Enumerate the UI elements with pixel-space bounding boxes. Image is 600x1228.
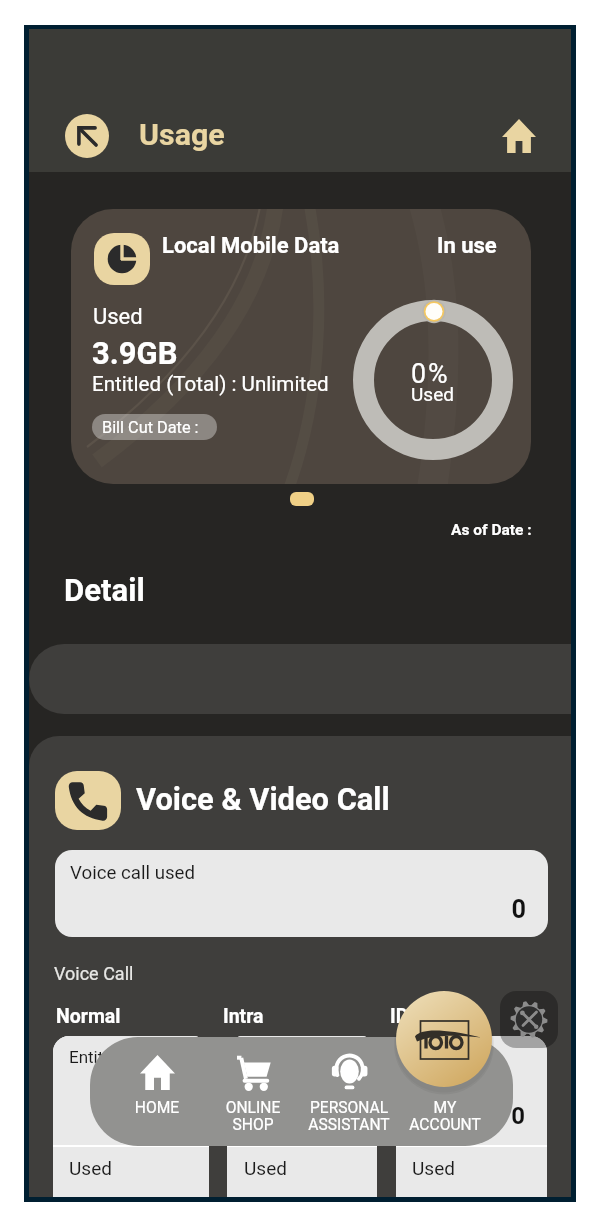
staticText: Intra <box>223 1005 264 1028</box>
staticText: 0 <box>396 1102 525 1130</box>
staticText: Entitled <box>244 1047 302 1067</box>
staticText: 0 <box>53 1102 188 1130</box>
staticText: Used <box>69 1157 112 1179</box>
staticText: Local Mobile Data <box>162 233 340 259</box>
staticText: Normal <box>56 1005 121 1028</box>
staticText: 0 <box>227 1102 355 1130</box>
staticText: PERSONAL ASSISTANT <box>301 1099 397 1133</box>
staticText: Entitled <box>69 1047 127 1067</box>
staticText: HOME <box>109 1099 205 1117</box>
staticText: Usage <box>139 117 225 153</box>
staticText: Used <box>93 304 143 330</box>
staticText: Bill Cut Date : <box>102 418 199 437</box>
staticText: Voice & Video Call <box>136 781 390 817</box>
button[interactable]: MY ACCOUNT <box>397 1037 493 1147</box>
button[interactable]: 1O1O <box>396 991 492 1087</box>
staticText: Detail <box>64 572 145 608</box>
staticText: Used <box>412 1157 455 1179</box>
staticText: 0 <box>300 895 526 925</box>
staticText: In use <box>437 233 497 259</box>
button[interactable]: Home <box>502 119 536 153</box>
button[interactable]: PERSONAL ASSISTANT <box>301 1037 397 1147</box>
staticText: ONLINE SHOP <box>205 1099 301 1133</box>
button[interactable]: IDD <box>396 1036 547 1197</box>
button[interactable]: HOME <box>109 1037 205 1147</box>
staticText: 3.9GB <box>92 335 178 371</box>
staticText: Entitled <box>412 1047 470 1067</box>
button[interactable]: Back <box>65 114 109 158</box>
staticText: Voice call used <box>70 862 196 884</box>
button[interactable]: ONLINE SHOP <box>205 1037 301 1147</box>
staticText: As of Date : <box>451 521 532 539</box>
button[interactable]: Voice call used 0 <box>55 850 548 937</box>
button[interactable]: Normal <box>53 1036 209 1197</box>
button[interactable]: Settings <box>500 991 558 1048</box>
staticText: Used <box>244 1157 287 1179</box>
staticText: Voice Call <box>54 963 134 984</box>
button[interactable]: Intra <box>227 1036 377 1197</box>
staticText: Used <box>411 383 454 405</box>
staticText: MY ACCOUNT <box>397 1099 493 1133</box>
button[interactable]: Local Mobile Data usage <box>71 209 531 484</box>
button[interactable]: Bill Cut Date <box>92 414 217 440</box>
staticText: ID <box>390 1005 409 1028</box>
staticText: Entitled (Total) : Unlimited <box>92 372 329 396</box>
staticText: 0% <box>411 358 450 389</box>
